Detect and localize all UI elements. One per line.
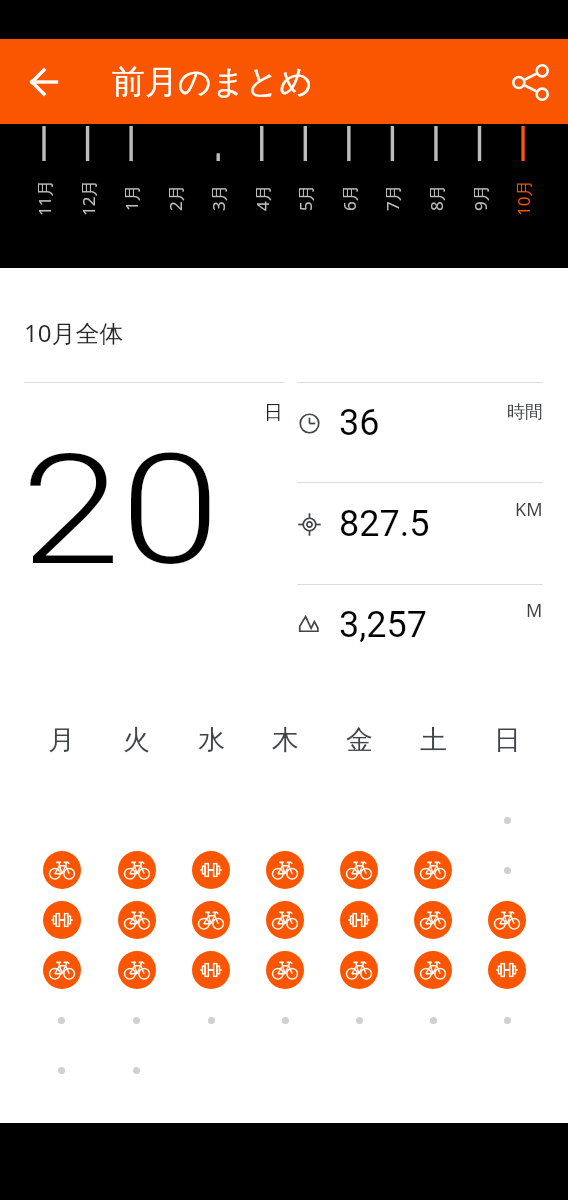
- button[interactable]: Cycling activity: [266, 901, 304, 939]
- staticText: 時間: [507, 401, 543, 424]
- staticText: 3月: [207, 184, 230, 211]
- button[interactable]: Strength activity: [192, 851, 230, 889]
- button[interactable]: Cycling activity: [414, 951, 452, 989]
- button[interactable]: Strength activity: [192, 951, 230, 989]
- staticText: 前月のまとめ: [112, 61, 314, 103]
- staticText: 827.5: [339, 503, 430, 545]
- staticText: 12月: [77, 179, 100, 216]
- staticText: KM: [515, 497, 543, 522]
- button[interactable]: Cycling activity: [266, 851, 304, 889]
- staticText: 4月: [251, 184, 274, 211]
- staticText: 水: [198, 723, 225, 757]
- staticText: 8月: [425, 184, 448, 211]
- button[interactable]: Strength activity: [340, 901, 378, 939]
- button[interactable]: 3,257: [0, 592, 568, 658]
- staticText: 10月: [512, 179, 535, 216]
- button[interactable]: Back: [20, 58, 68, 106]
- staticText: 1月: [120, 184, 143, 211]
- button[interactable]: Cycling activity: [43, 951, 81, 989]
- staticText: 20: [21, 422, 220, 600]
- staticText: 3,257: [339, 604, 428, 646]
- staticText: 火: [123, 723, 150, 757]
- button[interactable]: Cycling activity: [118, 951, 156, 989]
- staticText: 日: [494, 723, 521, 757]
- button[interactable]: Cycling activity: [192, 901, 230, 939]
- staticText: 6月: [338, 184, 361, 211]
- button[interactable]: 827.5: [0, 491, 568, 557]
- staticText: 土: [420, 723, 447, 757]
- staticText: 木: [272, 723, 299, 757]
- staticText: 11月: [33, 179, 56, 216]
- staticText: 金: [346, 723, 373, 757]
- button[interactable]: Cycling activity: [43, 851, 81, 889]
- button[interactable]: Cycling activity: [488, 901, 526, 939]
- button[interactable]: Cycling activity: [266, 951, 304, 989]
- staticText: 36: [339, 402, 380, 444]
- staticText: 5月: [294, 184, 317, 211]
- staticText: 7月: [381, 184, 404, 211]
- button[interactable]: Cycling activity: [118, 901, 156, 939]
- button[interactable]: Strength activity: [488, 951, 526, 989]
- staticText: 10月全体: [24, 316, 124, 349]
- button[interactable]: Cycling activity: [414, 901, 452, 939]
- staticText: 月: [48, 723, 75, 757]
- staticText: 2月: [164, 184, 187, 211]
- staticText: 9月: [469, 184, 492, 211]
- button[interactable]: Cycling activity: [118, 851, 156, 889]
- button[interactable]: Cycling activity: [414, 851, 452, 889]
- button[interactable]: Cycling activity: [340, 951, 378, 989]
- staticText: 日: [264, 401, 283, 425]
- button[interactable]: 36: [0, 390, 568, 456]
- button[interactable]: Cycling activity: [340, 851, 378, 889]
- button[interactable]: Strength activity: [43, 901, 81, 939]
- button[interactable]: Share: [506, 58, 554, 106]
- staticText: M: [526, 598, 543, 623]
